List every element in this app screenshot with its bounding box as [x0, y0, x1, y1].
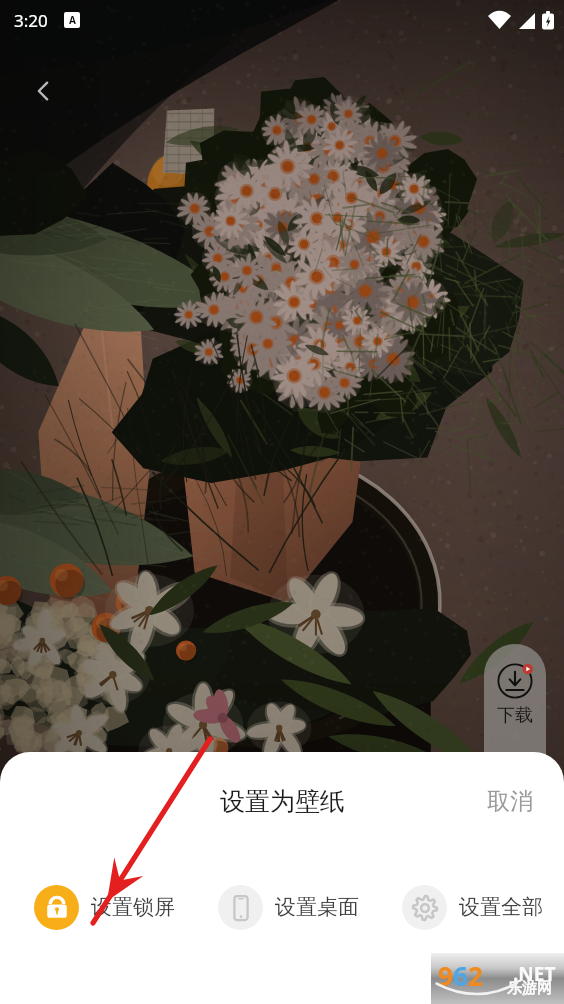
staticText: 9 — [438, 958, 453, 993]
staticText: A — [69, 13, 76, 27]
button[interactable]: 设置全部 — [380, 865, 564, 949]
button[interactable]: Back — [20, 68, 66, 114]
staticText: 设置为壁纸 — [220, 786, 345, 817]
button[interactable]: 设置桌面 — [196, 865, 380, 949]
staticText: 取消 — [487, 787, 533, 816]
staticText: 6 — [453, 958, 468, 993]
staticText: 乐游网 — [507, 979, 552, 998]
staticText: 设置全部 — [459, 894, 543, 920]
button[interactable]: 设置锁屏 — [12, 865, 196, 949]
staticText: 2 — [468, 958, 483, 993]
staticText: 3:20 — [14, 9, 48, 32]
staticText: 设置锁屏 — [91, 894, 175, 920]
button[interactable]: 取消 — [479, 781, 541, 822]
staticText: .NET — [513, 961, 556, 987]
staticText: 下载 — [497, 704, 533, 727]
button[interactable]: Download — [484, 644, 546, 756]
staticText: 设置桌面 — [275, 894, 359, 920]
